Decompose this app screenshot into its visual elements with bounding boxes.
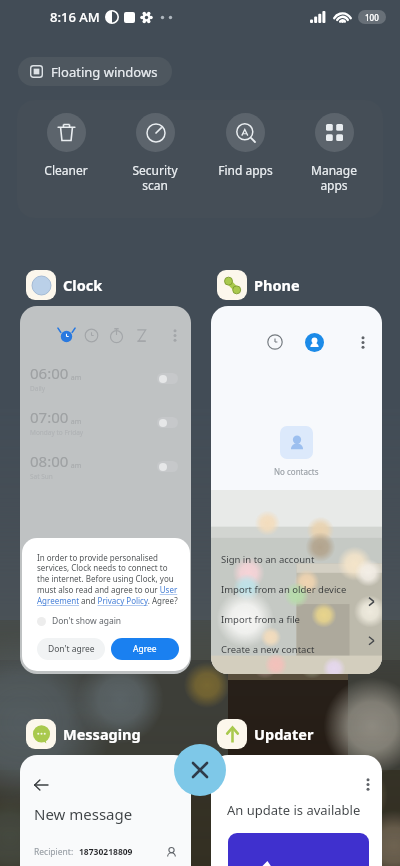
staticText: 18730218809: [79, 846, 133, 858]
staticText: 06:00: [30, 363, 69, 383]
staticText: Recipient:: [34, 846, 74, 858]
staticText: 07:00: [30, 407, 69, 427]
staticText: Updater: [254, 724, 314, 744]
staticText: 08:00: [30, 451, 69, 471]
button[interactable]: Messaging: [26, 719, 141, 749]
button[interactable]: Security scan: [114, 113, 196, 193]
staticText: Agree: [133, 643, 157, 655]
staticText: am: [69, 461, 82, 471]
staticText: Sat Sun: [30, 472, 53, 481]
staticText: Don't agree: [48, 643, 95, 655]
staticText: Import from an older device: [221, 583, 347, 596]
staticText: Phone: [254, 275, 300, 295]
staticText: Clock: [63, 275, 103, 295]
staticText: am: [69, 417, 82, 427]
staticText: An update is available: [227, 801, 361, 819]
button[interactable]: Don't agree: [37, 638, 105, 660]
button[interactable]: Close all: [174, 744, 226, 796]
staticText: Create a new contact: [221, 643, 315, 656]
staticText: am: [69, 373, 82, 383]
button[interactable]: Cleaner: [25, 113, 107, 178]
staticText: Messaging: [63, 724, 141, 744]
staticText: 100: [365, 12, 379, 23]
button[interactable]: Floating windows: [18, 57, 172, 86]
button[interactable]: Find apps: [204, 113, 286, 178]
staticText: Monday to Friday: [30, 428, 84, 437]
staticText: New message: [34, 804, 133, 824]
button[interactable]: Manage apps: [293, 113, 375, 193]
staticText: Cleaner: [44, 162, 88, 178]
staticText: Manage apps: [311, 162, 357, 193]
staticText: Sign in to an account: [221, 553, 315, 566]
staticText: In order to provide personalised service…: [37, 552, 179, 607]
staticText: Security scan: [132, 162, 178, 193]
staticText: Don't show again: [52, 615, 122, 627]
staticText: Find apps: [218, 162, 273, 178]
button[interactable]: Phone: [217, 270, 300, 300]
staticText: Daily: [30, 384, 46, 393]
staticText: 8:16 AM: [50, 8, 100, 26]
button[interactable]: Agree: [111, 638, 179, 660]
button[interactable]: Clock: [26, 270, 103, 300]
staticText: No contacts: [274, 466, 319, 477]
staticText: Import from a file: [221, 613, 300, 626]
staticText: Floating windows: [51, 63, 158, 81]
button[interactable]: Updater: [217, 719, 314, 749]
